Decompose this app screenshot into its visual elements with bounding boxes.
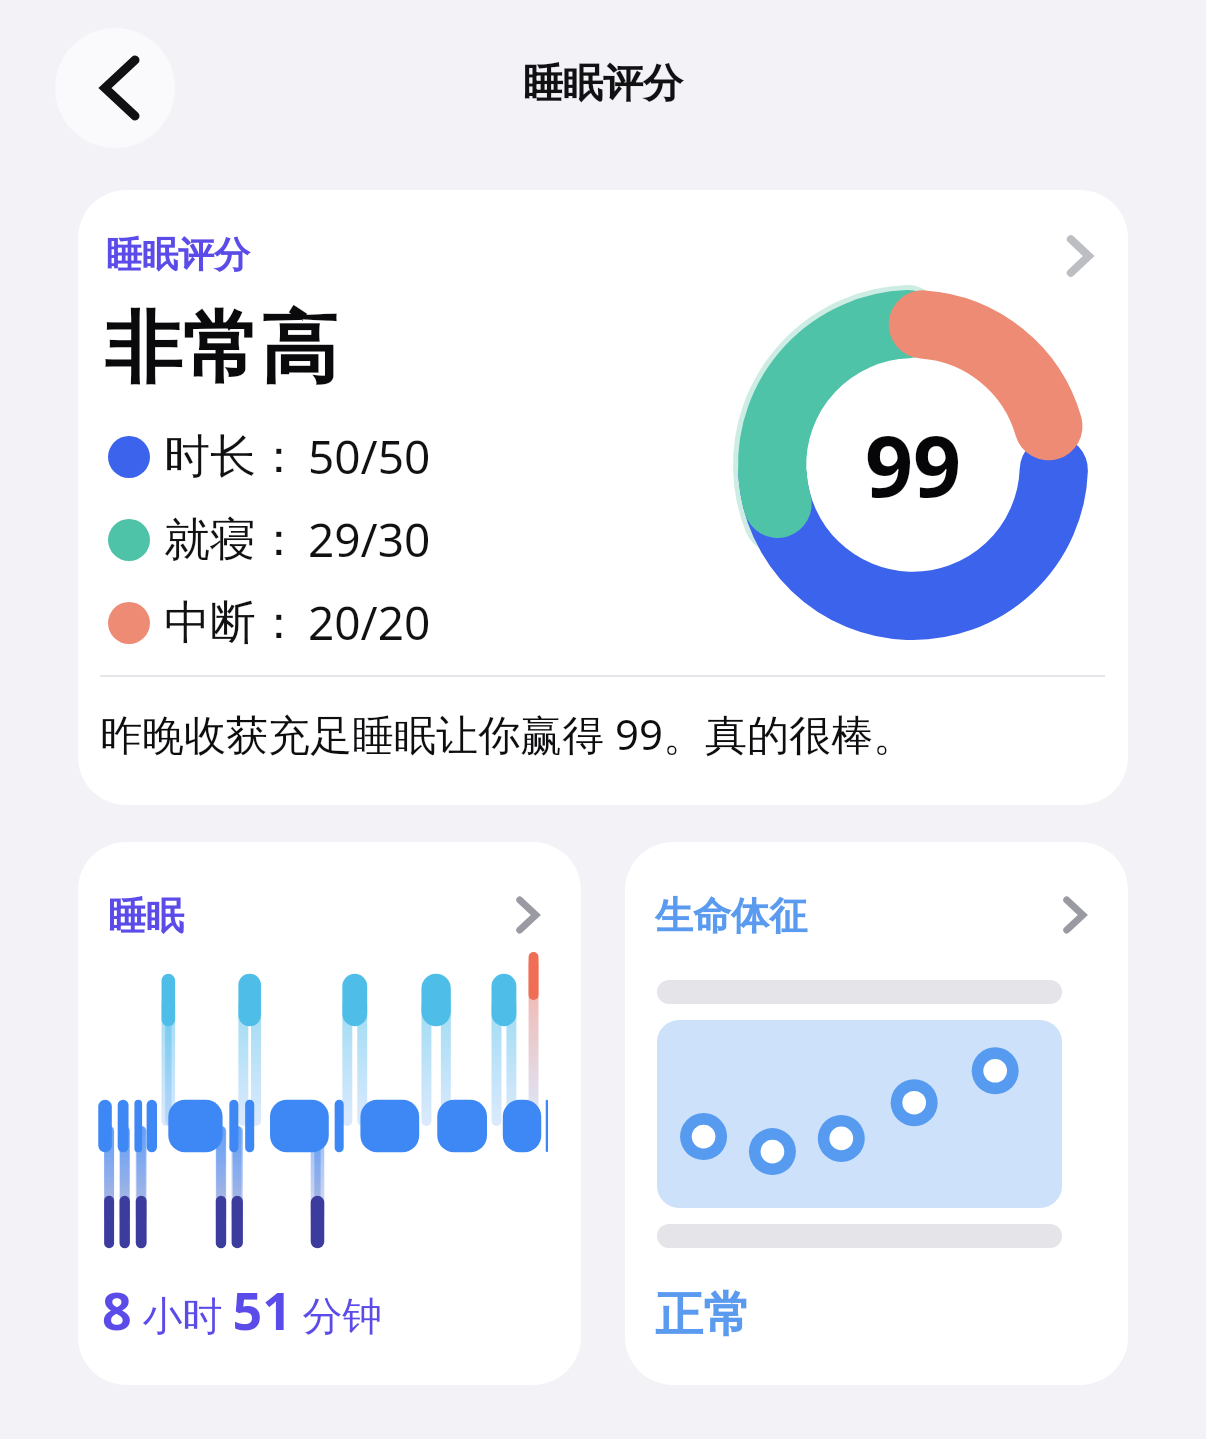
button[interactable]: 睡眠 (78, 842, 581, 1385)
staticText: 非常高 (104, 300, 338, 398)
staticText: 50/50 (308, 425, 431, 488)
staticText: 睡眠评分 (523, 58, 683, 108)
button[interactable]: Back (55, 28, 175, 148)
staticText: 就寝： (164, 511, 302, 569)
button[interactable]: Open sleep score details (1052, 228, 1108, 284)
button[interactable]: 睡眠评分 (78, 190, 1128, 805)
staticText: 正常 (655, 1285, 751, 1345)
staticText: 8 小时 51 分钟 (102, 1274, 383, 1345)
button[interactable]: Open vitals details (1050, 890, 1100, 940)
staticText: 20/20 (308, 591, 431, 654)
staticText: 中断： (164, 594, 302, 652)
button[interactable]: 生命体征 (625, 842, 1128, 1385)
staticText: 睡眠评分 (106, 232, 250, 277)
staticText: 99 (865, 407, 962, 521)
staticText: 昨晚收获充足睡眠让你赢得 99。真的很棒。 (100, 705, 915, 762)
staticText: 时长： (164, 428, 302, 486)
staticText: 睡眠 (108, 892, 184, 940)
button[interactable]: Open sleep details (503, 890, 553, 940)
staticText: 生命体征 (655, 892, 807, 940)
staticText: 29/30 (308, 508, 431, 571)
